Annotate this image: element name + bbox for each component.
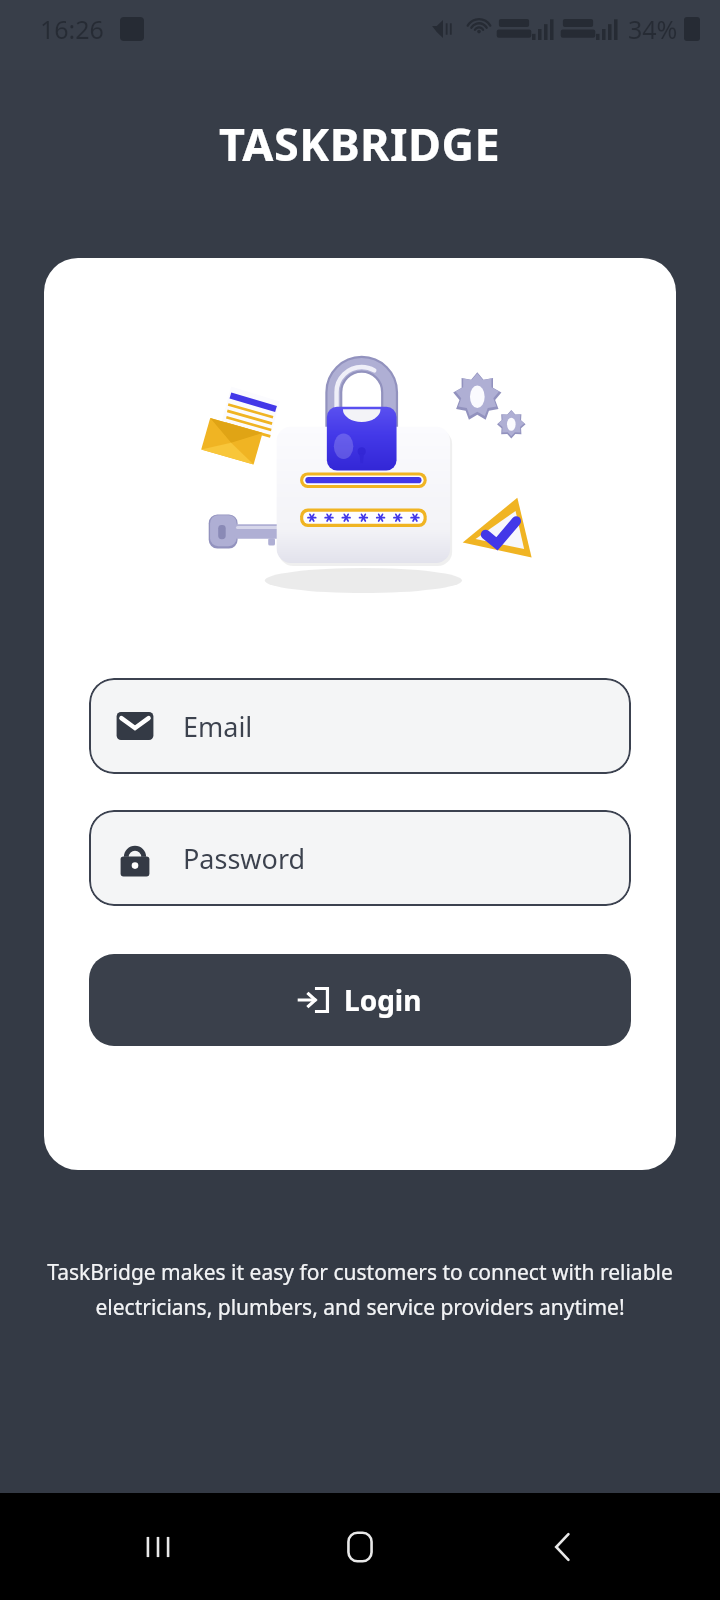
button[interactable]: Recent apps — [113, 1502, 203, 1592]
staticText: TASKBRIDGE — [219, 113, 501, 174]
staticText: 16:26 — [40, 12, 104, 46]
button[interactable]: Email — [89, 678, 631, 774]
staticText: Email — [183, 708, 253, 745]
staticText: Login — [344, 981, 422, 1019]
button[interactable]: Login — [89, 954, 631, 1046]
button[interactable]: Password — [89, 810, 631, 906]
staticText: Password — [183, 840, 306, 877]
button[interactable]: Home — [315, 1502, 405, 1592]
staticText: 34% — [628, 12, 678, 46]
button[interactable]: Back — [518, 1502, 608, 1592]
staticText: TaskBridge makes it easy for customers t… — [44, 1258, 676, 1322]
